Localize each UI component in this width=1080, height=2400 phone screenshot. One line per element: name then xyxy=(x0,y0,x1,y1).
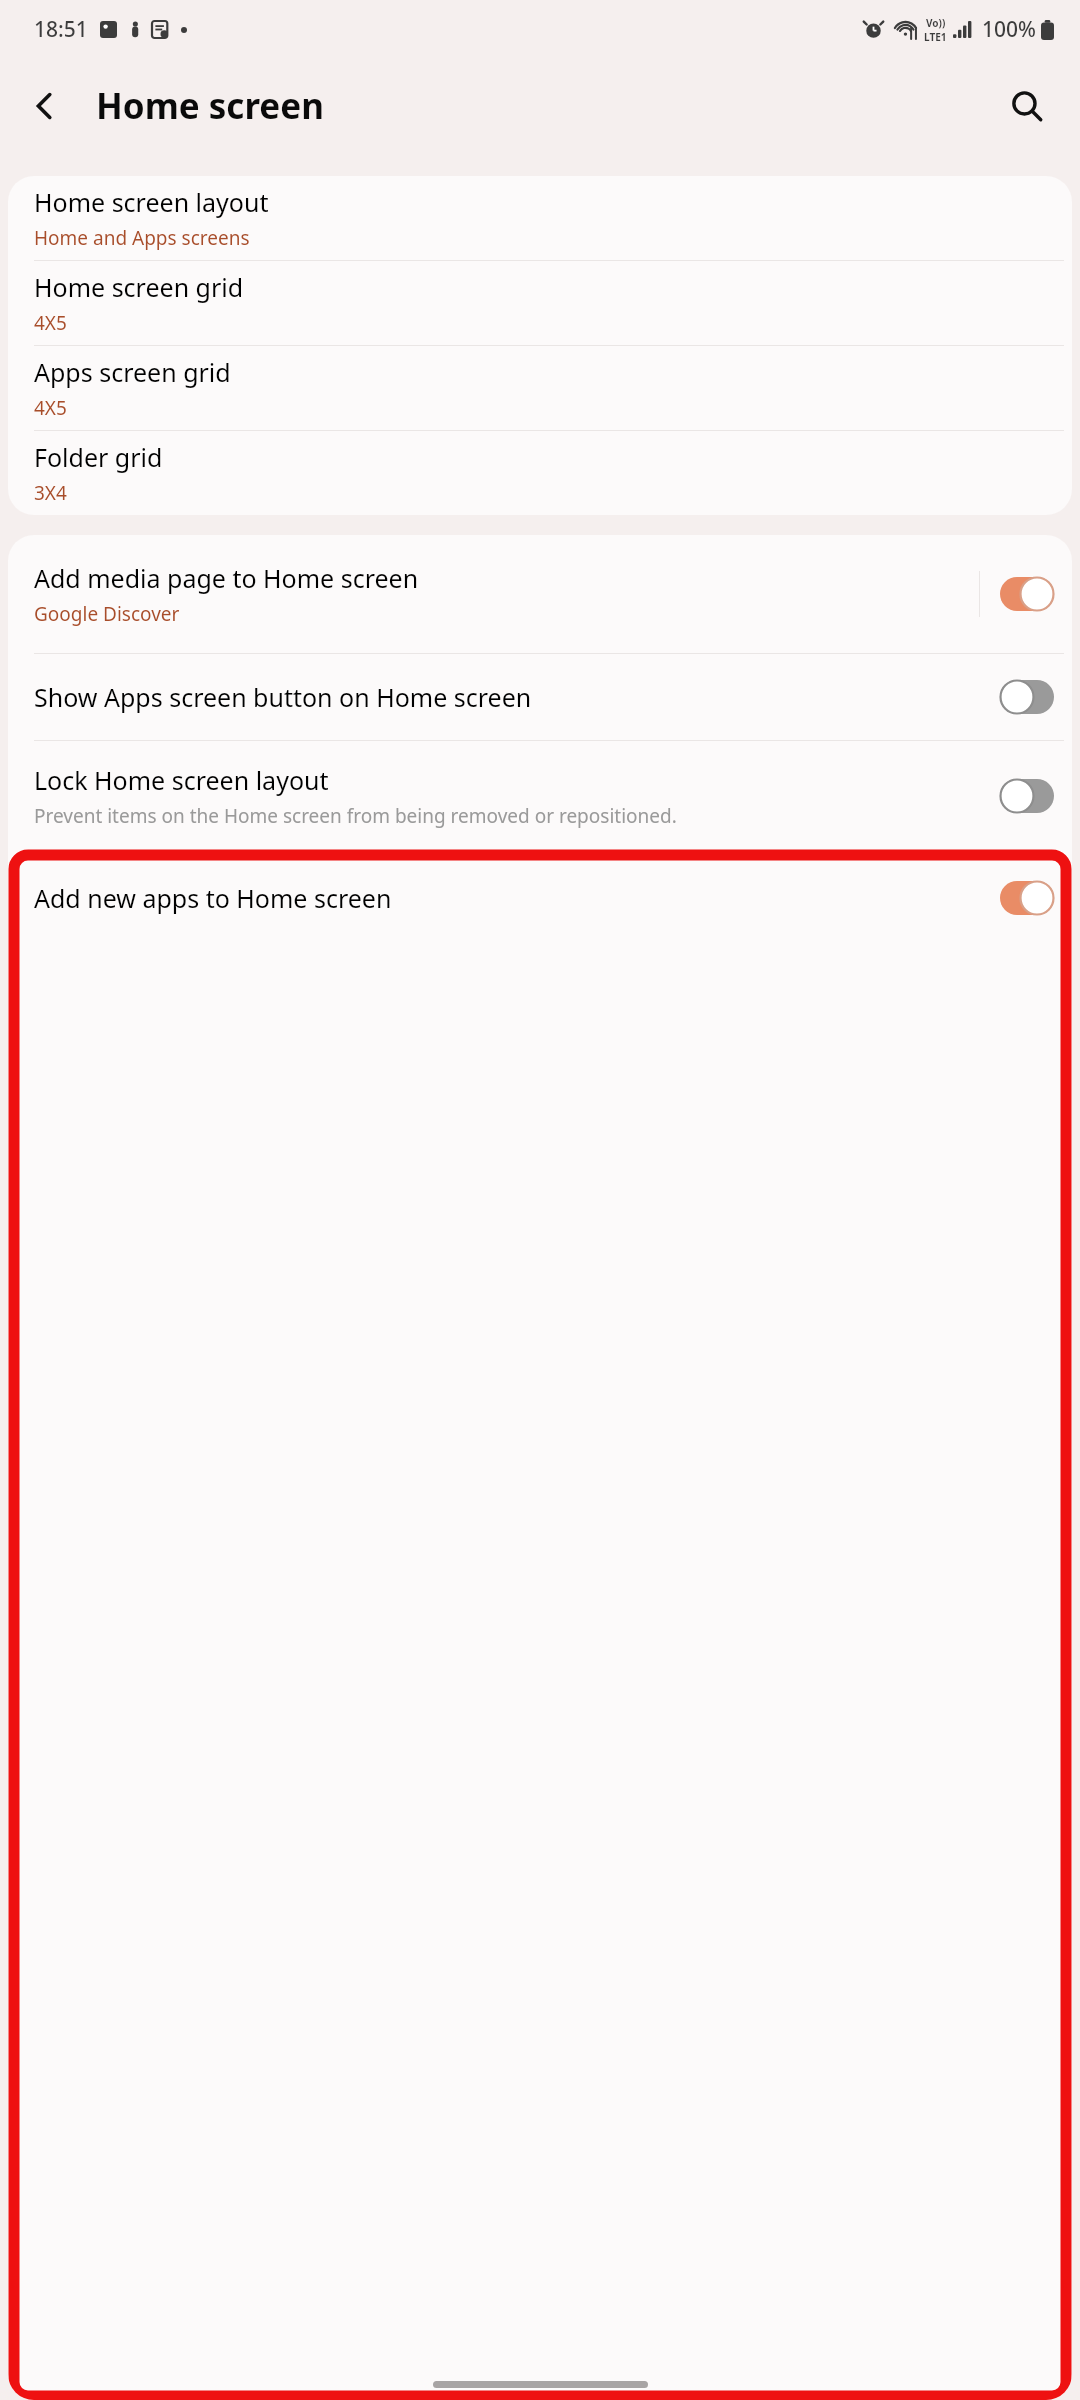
button[interactable]: Back xyxy=(14,75,76,137)
staticText: Add new apps to Home screen xyxy=(34,881,392,915)
staticText: LTE1 xyxy=(924,30,947,44)
staticText: 18:51 xyxy=(34,15,88,44)
button[interactable]: Apps screen grid xyxy=(8,346,1072,430)
button[interactable]: Lock Home screen layout xyxy=(8,741,1072,851)
staticText: Apps screen grid xyxy=(34,355,231,389)
button[interactable]: Add media page to Home screen xyxy=(8,535,1072,653)
button[interactable]: On xyxy=(1000,881,1054,915)
button[interactable]: On xyxy=(1000,577,1054,611)
staticText: Folder grid xyxy=(34,440,163,474)
button[interactable]: Home screen grid xyxy=(8,261,1072,345)
button[interactable]: Show Apps screen button on Home screen xyxy=(8,654,1072,740)
staticText: Home screen grid xyxy=(34,270,244,304)
staticText: Lock Home screen layout xyxy=(34,763,329,797)
button[interactable]: Add new apps to Home screen xyxy=(8,851,1072,945)
button[interactable]: Search xyxy=(996,75,1058,137)
staticText: Google Discover xyxy=(34,601,180,627)
button[interactable]: Off xyxy=(1000,779,1054,813)
staticText: Home screen xyxy=(96,82,324,130)
button[interactable]: Folder grid xyxy=(8,431,1072,515)
staticText: 3X4 xyxy=(34,480,67,506)
staticText: Home and Apps screens xyxy=(34,225,250,251)
staticText: Home screen layout xyxy=(34,185,269,219)
staticText: Vo)) xyxy=(926,16,946,30)
staticText: Add media page to Home screen xyxy=(34,561,419,595)
staticText: 100% xyxy=(982,15,1036,44)
button[interactable]: Home screen layout xyxy=(8,176,1072,260)
staticText: 4X5 xyxy=(34,310,67,336)
button[interactable]: Off xyxy=(1000,680,1054,714)
staticText: Prevent items on the Home screen from be… xyxy=(34,803,677,829)
staticText: 4X5 xyxy=(34,395,67,421)
staticText: Show Apps screen button on Home screen xyxy=(34,680,532,714)
